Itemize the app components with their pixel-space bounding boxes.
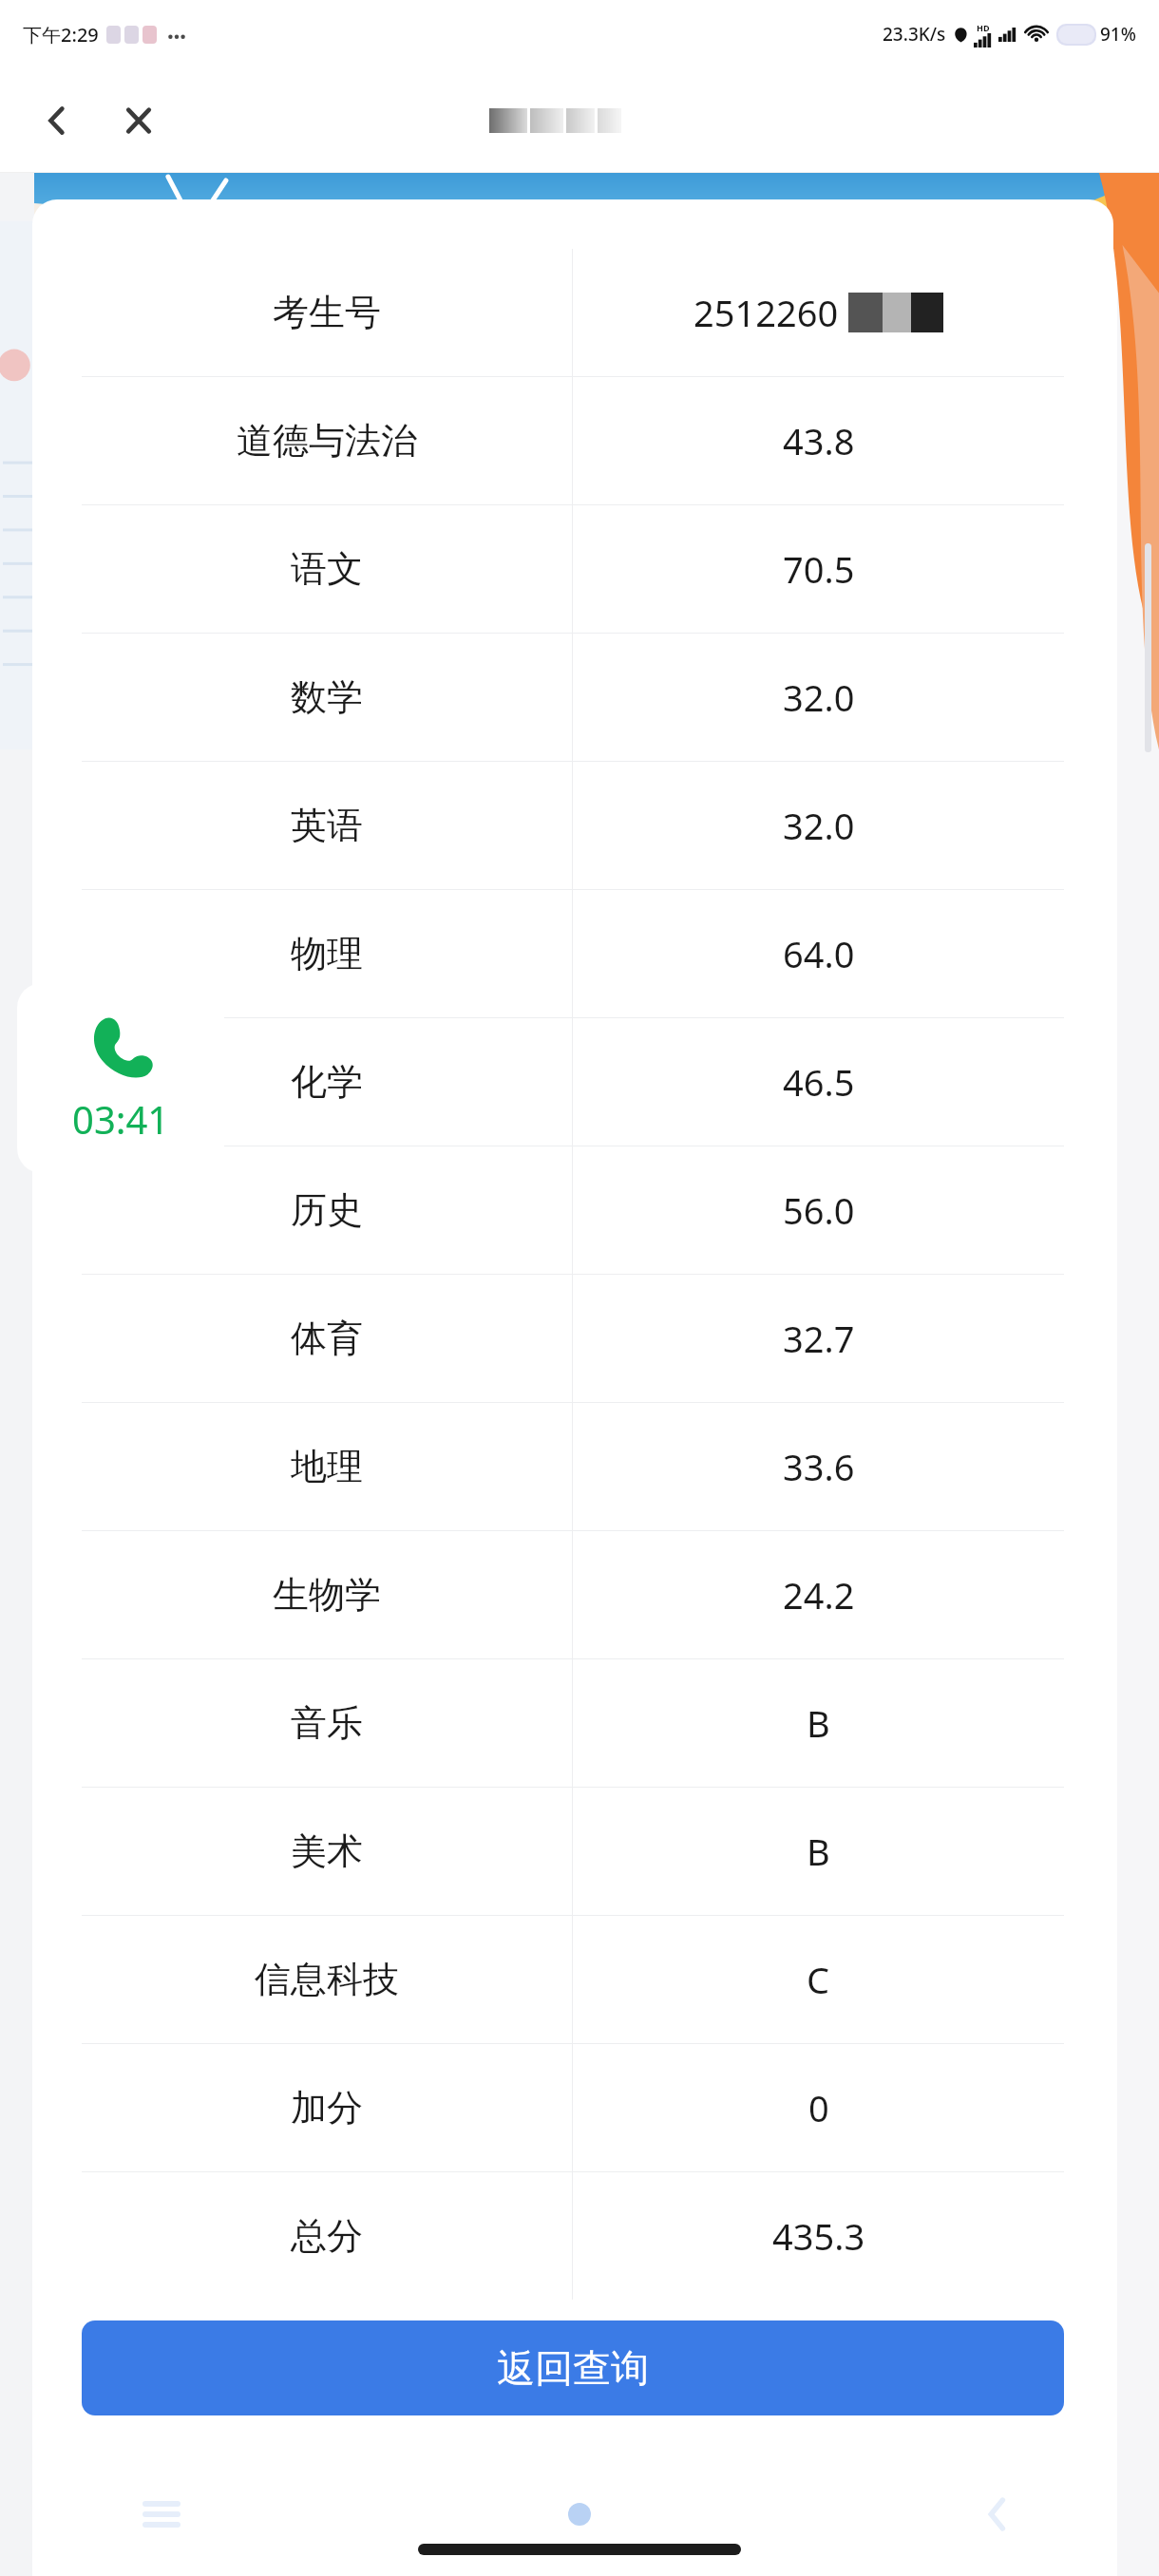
staticText: 返回查询	[497, 2344, 649, 2392]
staticText: 2512260	[693, 288, 839, 337]
button[interactable]: 考生号	[82, 249, 1064, 376]
staticText: 语文	[291, 546, 363, 592]
staticText: 英语	[291, 803, 363, 848]
staticText: 地理	[291, 1444, 363, 1489]
staticText: 物理	[291, 931, 363, 976]
button[interactable]: 总分	[82, 2172, 1064, 2300]
button[interactable]: Back	[959, 2476, 1035, 2552]
staticText: 23.3K/s	[883, 22, 946, 47]
staticText: 32.7	[783, 1314, 855, 1363]
staticText: 46.5	[783, 1057, 855, 1107]
staticText: 体育	[291, 1316, 363, 1361]
button[interactable]: 物理	[82, 890, 1064, 1017]
staticText: 64.0	[783, 929, 855, 978]
button[interactable]: 音乐	[82, 1659, 1064, 1787]
staticText: C	[807, 1955, 830, 2004]
button[interactable]: 信息科技	[82, 1916, 1064, 2043]
staticText: 美术	[291, 1828, 363, 1874]
button[interactable]: Ongoing call 03:41	[17, 983, 224, 1173]
staticText: 数学	[291, 674, 363, 720]
button[interactable]: Recents	[123, 2476, 199, 2552]
staticText: 音乐	[291, 1700, 363, 1746]
staticText: 70.5	[783, 544, 855, 594]
staticText: 生物学	[273, 1572, 381, 1618]
staticText: B	[807, 1698, 830, 1748]
button[interactable]: 地理	[82, 1403, 1064, 1530]
button[interactable]: Back	[23, 86, 91, 155]
staticText: 历史	[291, 1187, 363, 1233]
button[interactable]: 加分	[82, 2044, 1064, 2171]
button[interactable]: Close	[104, 86, 173, 155]
button[interactable]: 体育	[82, 1275, 1064, 1402]
staticText: 0	[808, 2083, 829, 2132]
staticText: HD	[977, 22, 990, 33]
button[interactable]: 数学	[82, 634, 1064, 761]
staticText: B	[807, 1827, 830, 1876]
staticText: 33.6	[783, 1442, 855, 1491]
staticText: 32.0	[783, 672, 855, 722]
staticText: 总分	[291, 2213, 363, 2259]
button[interactable]: 道德与法治	[82, 377, 1064, 504]
staticText: 435.3	[772, 2211, 865, 2261]
button[interactable]: 历史	[82, 1146, 1064, 1274]
staticText: 考生号	[273, 290, 381, 335]
button[interactable]: 语文	[82, 505, 1064, 633]
staticText: 化学	[291, 1059, 363, 1105]
button[interactable]: 化学	[82, 1018, 1064, 1146]
staticText: 24.2	[783, 1570, 855, 1619]
button[interactable]: 美术	[82, 1788, 1064, 1915]
staticText: 43.8	[783, 416, 855, 465]
button[interactable]: 返回查询	[82, 2320, 1064, 2415]
staticText: 加分	[291, 2085, 363, 2131]
staticText: 56.0	[783, 1185, 855, 1235]
staticText: 91%	[1100, 22, 1136, 47]
staticText: 信息科技	[255, 1957, 399, 2002]
staticText: 03:41	[72, 1093, 170, 1145]
staticText: 道德与法治	[237, 418, 417, 464]
staticText: 32.0	[783, 801, 855, 850]
button[interactable]: 生物学	[82, 1531, 1064, 1658]
staticText: 下午2:29	[23, 22, 99, 47]
button[interactable]: Home	[541, 2476, 617, 2552]
button[interactable]: 英语	[82, 762, 1064, 889]
